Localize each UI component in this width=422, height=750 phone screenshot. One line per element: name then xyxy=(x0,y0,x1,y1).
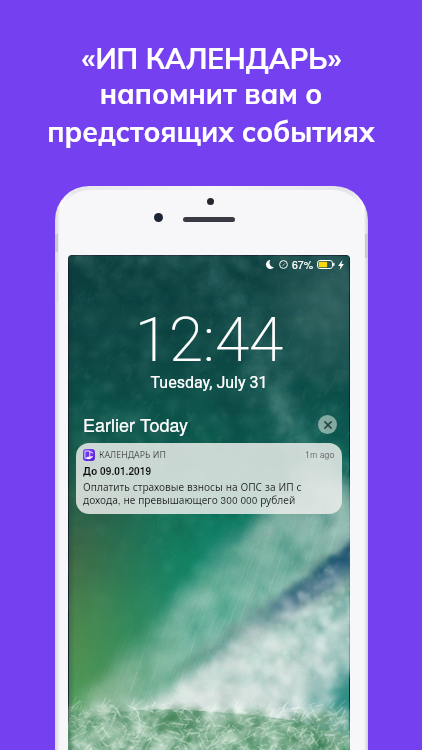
staticText: Оплатить страховые взносы на ОПС за ИП с… xyxy=(83,479,302,507)
staticText: КАЛЕНДАРЬ ИП xyxy=(99,448,166,461)
staticText: напомнит вам о предстоящих событиях xyxy=(47,76,375,149)
button[interactable]: Clear notifications xyxy=(318,415,337,434)
staticText: Earlier Today xyxy=(83,411,188,437)
staticText: До 09.01.2019 xyxy=(83,464,152,479)
staticText: Tuesday, July 31 xyxy=(69,373,349,392)
staticText: 1m ago xyxy=(305,448,335,461)
button[interactable]: КАЛЕНДАРЬ ИП xyxy=(76,443,342,514)
staticText: 12:44 xyxy=(69,303,349,376)
staticText: «ИП КАЛЕНДАРЬ» xyxy=(81,41,342,76)
staticText: 67% xyxy=(292,257,314,272)
